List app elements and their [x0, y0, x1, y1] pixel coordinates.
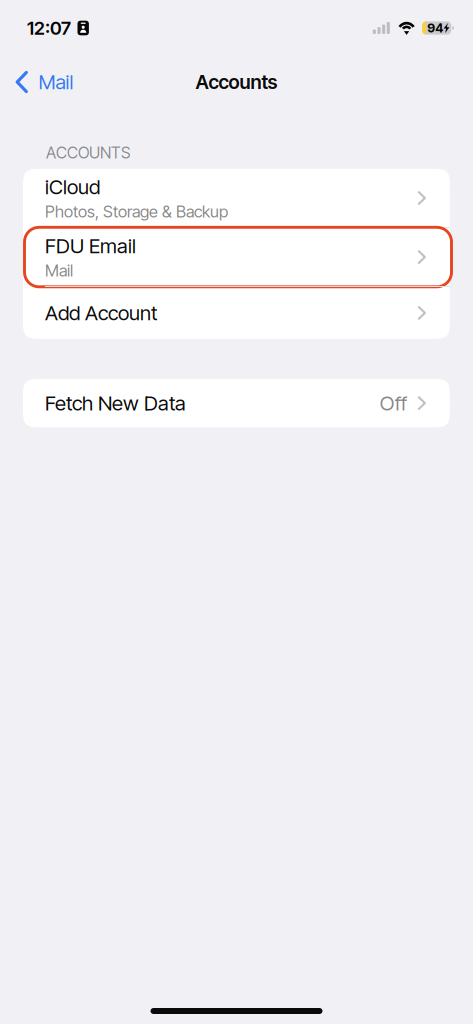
staticText: FDU Email: [45, 233, 136, 258]
staticText: Accounts: [195, 70, 277, 94]
button[interactable]: iCloud: [23, 169, 450, 227]
staticText: Mail: [38, 70, 73, 94]
staticText: Off: [380, 391, 407, 415]
staticText: 12:07: [27, 17, 71, 39]
staticText: Fetch New Data: [45, 391, 186, 415]
staticText: iCloud: [45, 174, 100, 199]
button[interactable]: FDU Email: [23, 228, 450, 286]
button[interactable]: Add Account: [23, 287, 450, 339]
button[interactable]: Fetch New Data: [23, 379, 450, 427]
staticText: Photos, Storage & Backup: [45, 202, 228, 221]
staticText: Mail: [45, 261, 73, 280]
staticText: 94: [427, 20, 443, 36]
button[interactable]: Mail: [0, 61, 87, 103]
staticText: ACCOUNTS: [46, 143, 130, 162]
staticText: Add Account: [45, 301, 157, 325]
